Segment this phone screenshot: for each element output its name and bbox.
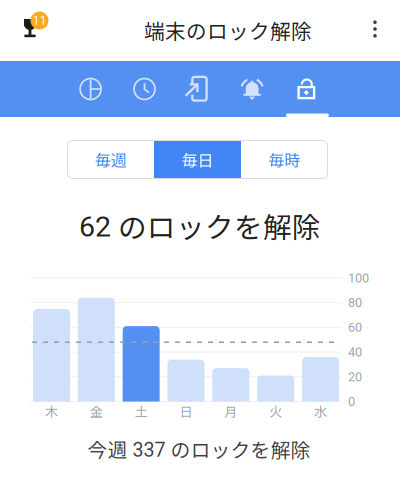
button[interactable]: 毎日 (154, 140, 241, 178)
staticText: 60 (348, 320, 362, 335)
staticText: 100 (348, 270, 369, 285)
button[interactable]: App launches (171, 61, 225, 117)
staticText: 木 (45, 401, 58, 420)
staticText: 土 (135, 401, 148, 420)
button[interactable]: Unlocks (280, 61, 334, 117)
button[interactable]: 毎週 (67, 140, 154, 178)
staticText: 月 (224, 401, 237, 420)
button[interactable]: More options (353, 5, 397, 53)
staticText: 毎日 (181, 148, 213, 171)
staticText: 毎時 (268, 148, 300, 171)
button[interactable]: Screen time (64, 61, 117, 117)
staticText: 水 (314, 401, 327, 420)
staticText: 毎週 (95, 148, 127, 171)
staticText: 0 (348, 394, 355, 409)
button[interactable]: Achievements (6, 5, 54, 53)
staticText: 80 (348, 295, 362, 310)
staticText: 火 (269, 401, 282, 420)
staticText: 日 (179, 401, 192, 420)
staticText: 今週 337 のロックを解除 (87, 435, 310, 463)
button[interactable]: Usage time (118, 61, 171, 117)
staticText: 62 のロックを解除 (79, 205, 321, 246)
staticText: 金 (90, 401, 103, 420)
button[interactable]: 毎時 (241, 140, 327, 178)
staticText: 20 (348, 369, 362, 384)
staticText: 11 (32, 13, 46, 28)
staticText: 端末のロック解除 (144, 15, 312, 45)
button[interactable]: Notifications (225, 61, 279, 117)
staticText: 40 (348, 345, 362, 360)
